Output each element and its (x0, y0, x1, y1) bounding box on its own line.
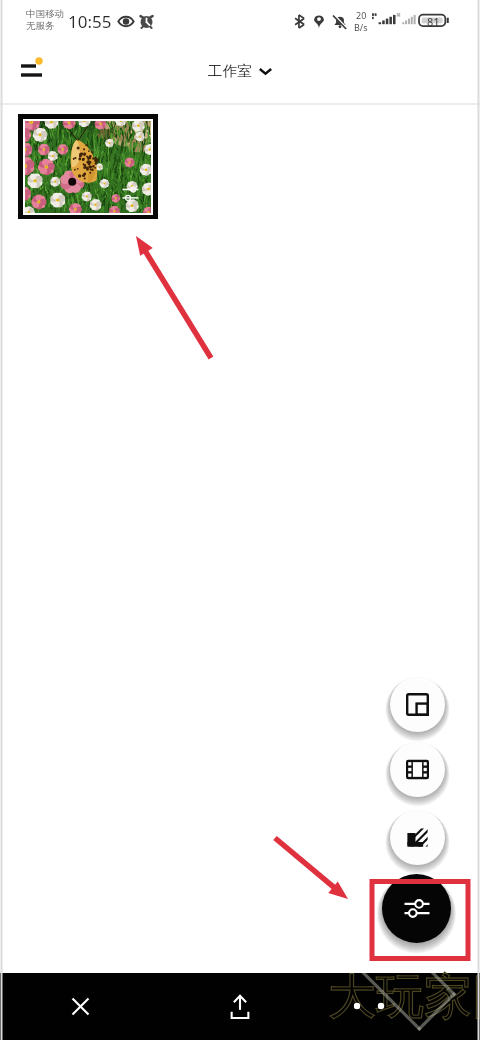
button[interactable]: 工作室 (0, 55, 480, 87)
button[interactable]: Gradient fill (390, 810, 445, 865)
button[interactable] (18, 114, 158, 219)
staticText: 20 (356, 9, 367, 21)
button[interactable]: Menu (6, 44, 56, 94)
button[interactable]: Adjust (382, 874, 451, 943)
staticText: 81 (427, 14, 440, 29)
button[interactable]: Collage layout (390, 677, 445, 732)
button[interactable]: Share (160, 973, 320, 1040)
staticText: B/s (354, 21, 368, 33)
staticText: 中国移动 (26, 8, 64, 20)
staticText: 无服务 (26, 20, 55, 32)
staticText: 大玩家网 (328, 967, 480, 1027)
staticText: 10:55 (68, 10, 112, 33)
button[interactable]: Close (0, 973, 160, 1040)
button[interactable]: Film strip (390, 742, 445, 797)
staticText: 工作室 (208, 62, 252, 80)
